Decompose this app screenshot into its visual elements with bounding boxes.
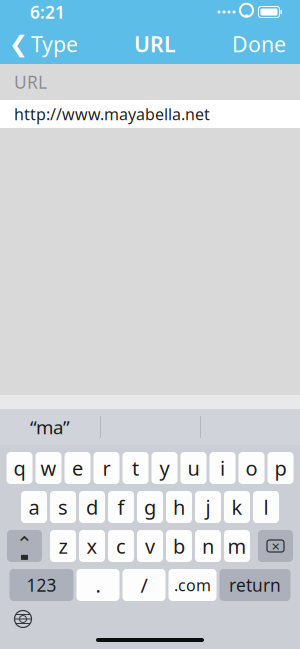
staticText: 6:21 <box>30 0 65 23</box>
staticText: .com <box>174 574 211 596</box>
staticText: i <box>220 455 225 481</box>
staticText: b <box>173 533 185 559</box>
button[interactable]: f <box>108 491 134 523</box>
staticText: x <box>86 533 97 559</box>
staticText: g <box>144 494 156 520</box>
button[interactable]: a <box>21 491 47 523</box>
staticText: m <box>227 533 246 559</box>
button[interactable]: d <box>79 491 105 523</box>
button[interactable]: e <box>64 452 90 484</box>
staticText: / <box>140 572 147 598</box>
button[interactable]: v <box>137 530 163 562</box>
button[interactable]: q <box>6 452 32 484</box>
staticText: j <box>205 494 210 520</box>
staticText: f <box>117 494 124 520</box>
button[interactable]: x <box>79 530 105 562</box>
staticText: r <box>102 455 110 481</box>
staticText: 123 <box>26 573 56 596</box>
staticText: c <box>116 533 126 559</box>
button[interactable]: Done <box>232 24 300 64</box>
button[interactable]: c <box>108 530 134 562</box>
button[interactable]: o <box>238 452 264 484</box>
staticText: . <box>95 572 100 598</box>
staticText: y <box>159 455 169 481</box>
button[interactable]: j <box>195 491 221 523</box>
button[interactable]: l <box>253 491 279 523</box>
staticText: l <box>263 494 268 520</box>
staticText: d <box>86 494 98 520</box>
staticText: “ma” <box>30 415 70 439</box>
button[interactable]: “ma” <box>0 409 100 445</box>
staticText: w <box>40 455 56 481</box>
staticText: s <box>58 494 68 520</box>
staticText: o <box>245 455 257 481</box>
button[interactable]: m <box>224 530 250 562</box>
staticText: ⌃ <box>16 532 33 555</box>
button[interactable]: i <box>209 452 235 484</box>
button[interactable]: s <box>50 491 76 523</box>
staticText: http://www.mayabella.net <box>14 103 210 125</box>
button[interactable]: Next keyboard <box>8 604 38 634</box>
staticText: URL <box>14 70 47 93</box>
staticText: h <box>173 494 185 520</box>
button[interactable]: y <box>151 452 177 484</box>
staticText: URL <box>134 30 176 58</box>
button[interactable]: p <box>267 452 293 484</box>
button[interactable]: w <box>35 452 61 484</box>
button[interactable]: z <box>50 530 76 562</box>
button[interactable]: n <box>195 530 221 562</box>
button[interactable]: / <box>122 569 165 601</box>
staticText: u <box>187 455 199 481</box>
staticText: Done <box>232 30 286 58</box>
staticText: t <box>132 455 139 481</box>
staticText: z <box>58 533 67 559</box>
button[interactable]: . <box>76 569 119 601</box>
button[interactable]: u <box>180 452 206 484</box>
button[interactable]: r <box>93 452 119 484</box>
button[interactable]: b <box>166 530 192 562</box>
staticText: × <box>271 536 279 556</box>
staticText: e <box>72 455 83 481</box>
staticText: k <box>231 494 242 520</box>
staticText: q <box>13 455 25 481</box>
staticText: n <box>202 533 214 559</box>
button[interactable]: g <box>137 491 163 523</box>
button[interactable]: ❮ <box>0 24 78 64</box>
staticText: ❮ <box>9 31 28 57</box>
button[interactable]: Shift <box>7 530 42 562</box>
button[interactable]: t <box>122 452 148 484</box>
staticText: p <box>274 455 286 481</box>
button[interactable]: h <box>166 491 192 523</box>
button[interactable]: return <box>219 569 290 601</box>
staticText: a <box>28 494 39 520</box>
button[interactable]: 123 <box>9 569 73 601</box>
staticText: Type <box>31 30 78 58</box>
staticText: v <box>145 533 155 559</box>
button[interactable]: .com <box>168 569 216 601</box>
staticText: return <box>229 573 281 596</box>
button[interactable]: k <box>224 491 250 523</box>
button[interactable]: Delete <box>258 530 293 562</box>
